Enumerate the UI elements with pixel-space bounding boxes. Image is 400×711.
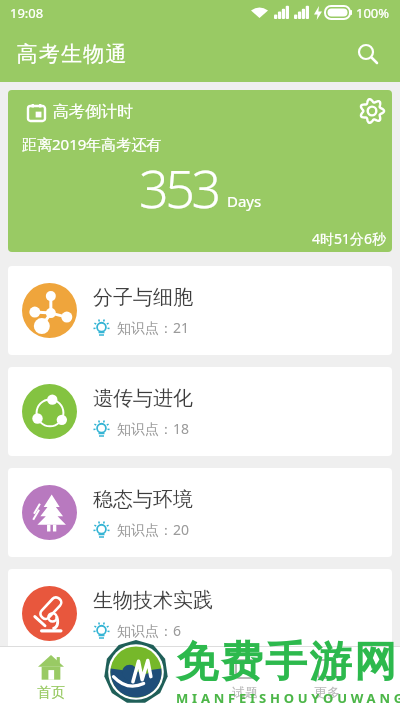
staticText: 知识点：21 bbox=[117, 318, 190, 337]
button[interactable]: 试题 bbox=[222, 658, 268, 700]
button[interactable]: 遗传与进化 bbox=[8, 367, 392, 456]
staticText: 稳态与环境 bbox=[93, 487, 193, 512]
button[interactable]: 首页 bbox=[23, 655, 79, 702]
staticText: 高考生物通 bbox=[16, 41, 127, 67]
button[interactable]: 生物技术实践 bbox=[8, 569, 392, 658]
button[interactable]: 分子与细胞 bbox=[8, 266, 392, 355]
button[interactable]: 高考倒计时 bbox=[8, 90, 392, 252]
staticText: 距离2019年高考还有 bbox=[22, 134, 162, 154]
staticText: 免费手游网 bbox=[176, 636, 399, 689]
staticText: MIANFEISHOUYOUWANG bbox=[176, 689, 400, 707]
staticText: 100% bbox=[356, 4, 390, 22]
button[interactable]: 稳态与环境 bbox=[8, 468, 392, 557]
staticText: 353 bbox=[139, 152, 218, 223]
staticText: 4时51分6秒 bbox=[312, 229, 387, 248]
button[interactable]: 更多 bbox=[304, 658, 350, 700]
staticText: 知识点：18 bbox=[117, 419, 190, 438]
staticText: 更多 bbox=[314, 684, 340, 700]
staticText: 生物技术实践 bbox=[93, 588, 213, 613]
staticText: 知识点：6 bbox=[117, 621, 182, 640]
staticText: 遗传与进化 bbox=[93, 386, 193, 411]
button[interactable] bbox=[348, 34, 388, 74]
staticText: 知识点：20 bbox=[117, 520, 190, 539]
staticText: 首页 bbox=[37, 684, 65, 702]
staticText: Days bbox=[227, 191, 262, 211]
staticText: 19:08 bbox=[10, 4, 44, 22]
button[interactable] bbox=[354, 93, 390, 129]
staticText: 分子与细胞 bbox=[93, 285, 193, 310]
staticText: 试题 bbox=[232, 684, 258, 700]
staticText: 高考倒计时 bbox=[53, 102, 133, 122]
